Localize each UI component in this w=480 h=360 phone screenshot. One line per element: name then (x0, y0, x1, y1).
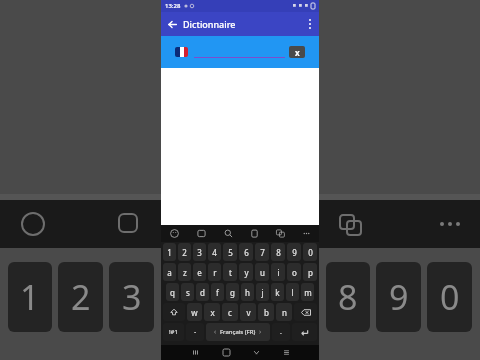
staticText: Français (FR) (220, 328, 256, 336)
staticText: t (229, 267, 232, 278)
button[interactable]: More options (301, 12, 319, 36)
button[interactable]: Translate (267, 225, 293, 242)
button[interactable]: Shift (163, 303, 185, 321)
button[interactable]: Home (211, 345, 241, 360)
button[interactable]: j (256, 283, 269, 301)
button[interactable]: Emoji (161, 225, 188, 242)
button[interactable]: Comma (186, 323, 204, 341)
staticText: z (183, 267, 187, 278)
staticText: u (260, 267, 265, 278)
staticText: › (259, 327, 262, 337)
button[interactable]: 8 (271, 243, 285, 261)
button[interactable]: u (255, 263, 269, 281)
staticText: 9 (292, 247, 297, 258)
staticText: !#1 (169, 328, 178, 336)
staticText: h (245, 287, 250, 298)
button[interactable]: a (163, 263, 176, 281)
button[interactable]: Symbols (163, 323, 184, 341)
button[interactable]: y (239, 263, 253, 281)
staticText: d (200, 287, 205, 298)
button[interactable]: p (303, 263, 317, 281)
button[interactable]: Back (241, 345, 271, 360)
button[interactable]: 6 (239, 243, 253, 261)
staticText: 7 (260, 247, 265, 258)
button[interactable]: Period (272, 323, 290, 341)
staticText: 5 (228, 247, 233, 258)
staticText: n (282, 307, 287, 318)
staticText: 9 (389, 274, 409, 320)
button[interactable]: k (271, 283, 284, 301)
button[interactable]: l (286, 283, 299, 301)
button[interactable]: w (187, 303, 202, 321)
staticText: p (308, 267, 313, 278)
button[interactable]: Stickers (188, 225, 215, 242)
staticText: m (304, 287, 312, 298)
button[interactable]: 2 (178, 243, 191, 261)
staticText: 2 (182, 247, 187, 258)
staticText: v (246, 307, 251, 318)
staticText: ‹ (214, 327, 217, 337)
button[interactable]: v (240, 303, 256, 321)
button[interactable]: Enter (292, 323, 317, 341)
staticText: 6 (244, 247, 249, 258)
button[interactable]: c (222, 303, 238, 321)
button[interactable]: 7 (255, 243, 269, 261)
button[interactable]: d (196, 283, 209, 301)
button[interactable]: ‹ (206, 323, 270, 341)
button[interactable]: 9 (287, 243, 301, 261)
button[interactable]: 1 (163, 243, 176, 261)
button[interactable]: t (223, 263, 237, 281)
staticText: b (264, 307, 269, 318)
staticText: j (261, 287, 264, 298)
staticText: c (228, 307, 232, 318)
button[interactable]: o (287, 263, 301, 281)
staticText: l (291, 287, 294, 298)
button[interactable]: x (204, 303, 220, 321)
staticText: 0 (308, 247, 313, 258)
button[interactable]: 4 (208, 243, 221, 261)
button[interactable]: n (276, 303, 292, 321)
staticText: s (186, 287, 190, 298)
button[interactable]: Recent apps (180, 345, 211, 360)
staticText: k (275, 287, 280, 298)
staticText: x (295, 47, 300, 58)
staticText: - (194, 327, 197, 337)
staticText: a (167, 267, 172, 278)
button[interactable]: Back (161, 12, 183, 36)
staticText: q (170, 287, 175, 298)
button[interactable]: Search (215, 225, 241, 242)
button[interactable]: q (166, 283, 179, 301)
button[interactable]: 3 (193, 243, 206, 261)
staticText: 8 (338, 274, 358, 320)
staticText: 3 (122, 274, 142, 320)
button[interactable]: z (178, 263, 191, 281)
button[interactable]: 5 (223, 243, 237, 261)
button[interactable]: Clear (289, 46, 305, 58)
staticText: o (292, 267, 297, 278)
button[interactable]: e (193, 263, 206, 281)
button[interactable]: Menu (271, 345, 301, 360)
staticText: r (213, 267, 217, 278)
staticText: Dictionnaire (183, 18, 236, 30)
staticText: i (277, 267, 280, 278)
button[interactable]: r (208, 263, 221, 281)
button[interactable]: s (181, 283, 194, 301)
staticText: e (197, 267, 202, 278)
button[interactable]: More (293, 225, 319, 242)
button[interactable]: b (258, 303, 274, 321)
button[interactable]: Clipboard (241, 225, 267, 242)
button[interactable]: m (301, 283, 314, 301)
staticText: w (191, 307, 198, 318)
staticText: . (280, 327, 282, 337)
button[interactable]: f (211, 283, 224, 301)
button[interactable]: Backspace (294, 303, 317, 321)
staticText: f (216, 287, 219, 298)
staticText: 8 (276, 247, 281, 258)
button[interactable]: 0 (303, 243, 317, 261)
button[interactable]: i (271, 263, 285, 281)
staticText: 4 (212, 247, 217, 258)
button[interactable]: g (226, 283, 239, 301)
button[interactable]: Language French (175, 47, 188, 57)
button[interactable]: h (241, 283, 254, 301)
staticText: g (230, 287, 235, 298)
